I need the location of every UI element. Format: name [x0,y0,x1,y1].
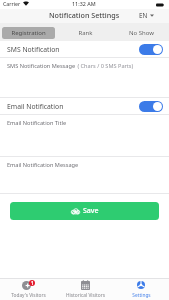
staticText: Notification Settings [49,10,120,20]
button[interactable]: Email Notification toggle [139,101,163,112]
button[interactable]: Save [10,202,159,220]
button[interactable]: 1 [0,279,57,300]
staticText: Carrier [3,0,21,7]
staticText: Email Notification Title [7,119,67,127]
button[interactable]: EN [139,11,154,20]
staticText: 1 [31,280,34,286]
staticText: SMS Notification [7,45,60,54]
staticText: Settings [132,292,151,299]
staticText: Save [83,206,99,216]
button[interactable]: SMS Notification toggle [139,44,163,55]
staticText: Rank [78,29,93,37]
button[interactable]: Registration [2,27,55,39]
staticText: Email Notification [7,102,64,111]
staticText: Today's Visitors [11,292,46,299]
staticText: No Show [129,29,154,37]
staticText: ( Chars / 0 SMS Parts) [76,62,134,70]
staticText: Registration [11,29,46,37]
staticText: EN [139,11,148,20]
button[interactable]: Historical Visitors [57,279,113,300]
staticText: SMS Notification Message [7,62,76,70]
button[interactable]: Settings [113,279,169,300]
staticText: Historical Visitors [66,292,105,299]
button[interactable]: No Show [115,27,167,39]
staticText: 11:32 AM [72,0,96,7]
staticText: Email Notification Message [7,161,79,169]
button[interactable]: Rank [59,27,111,39]
